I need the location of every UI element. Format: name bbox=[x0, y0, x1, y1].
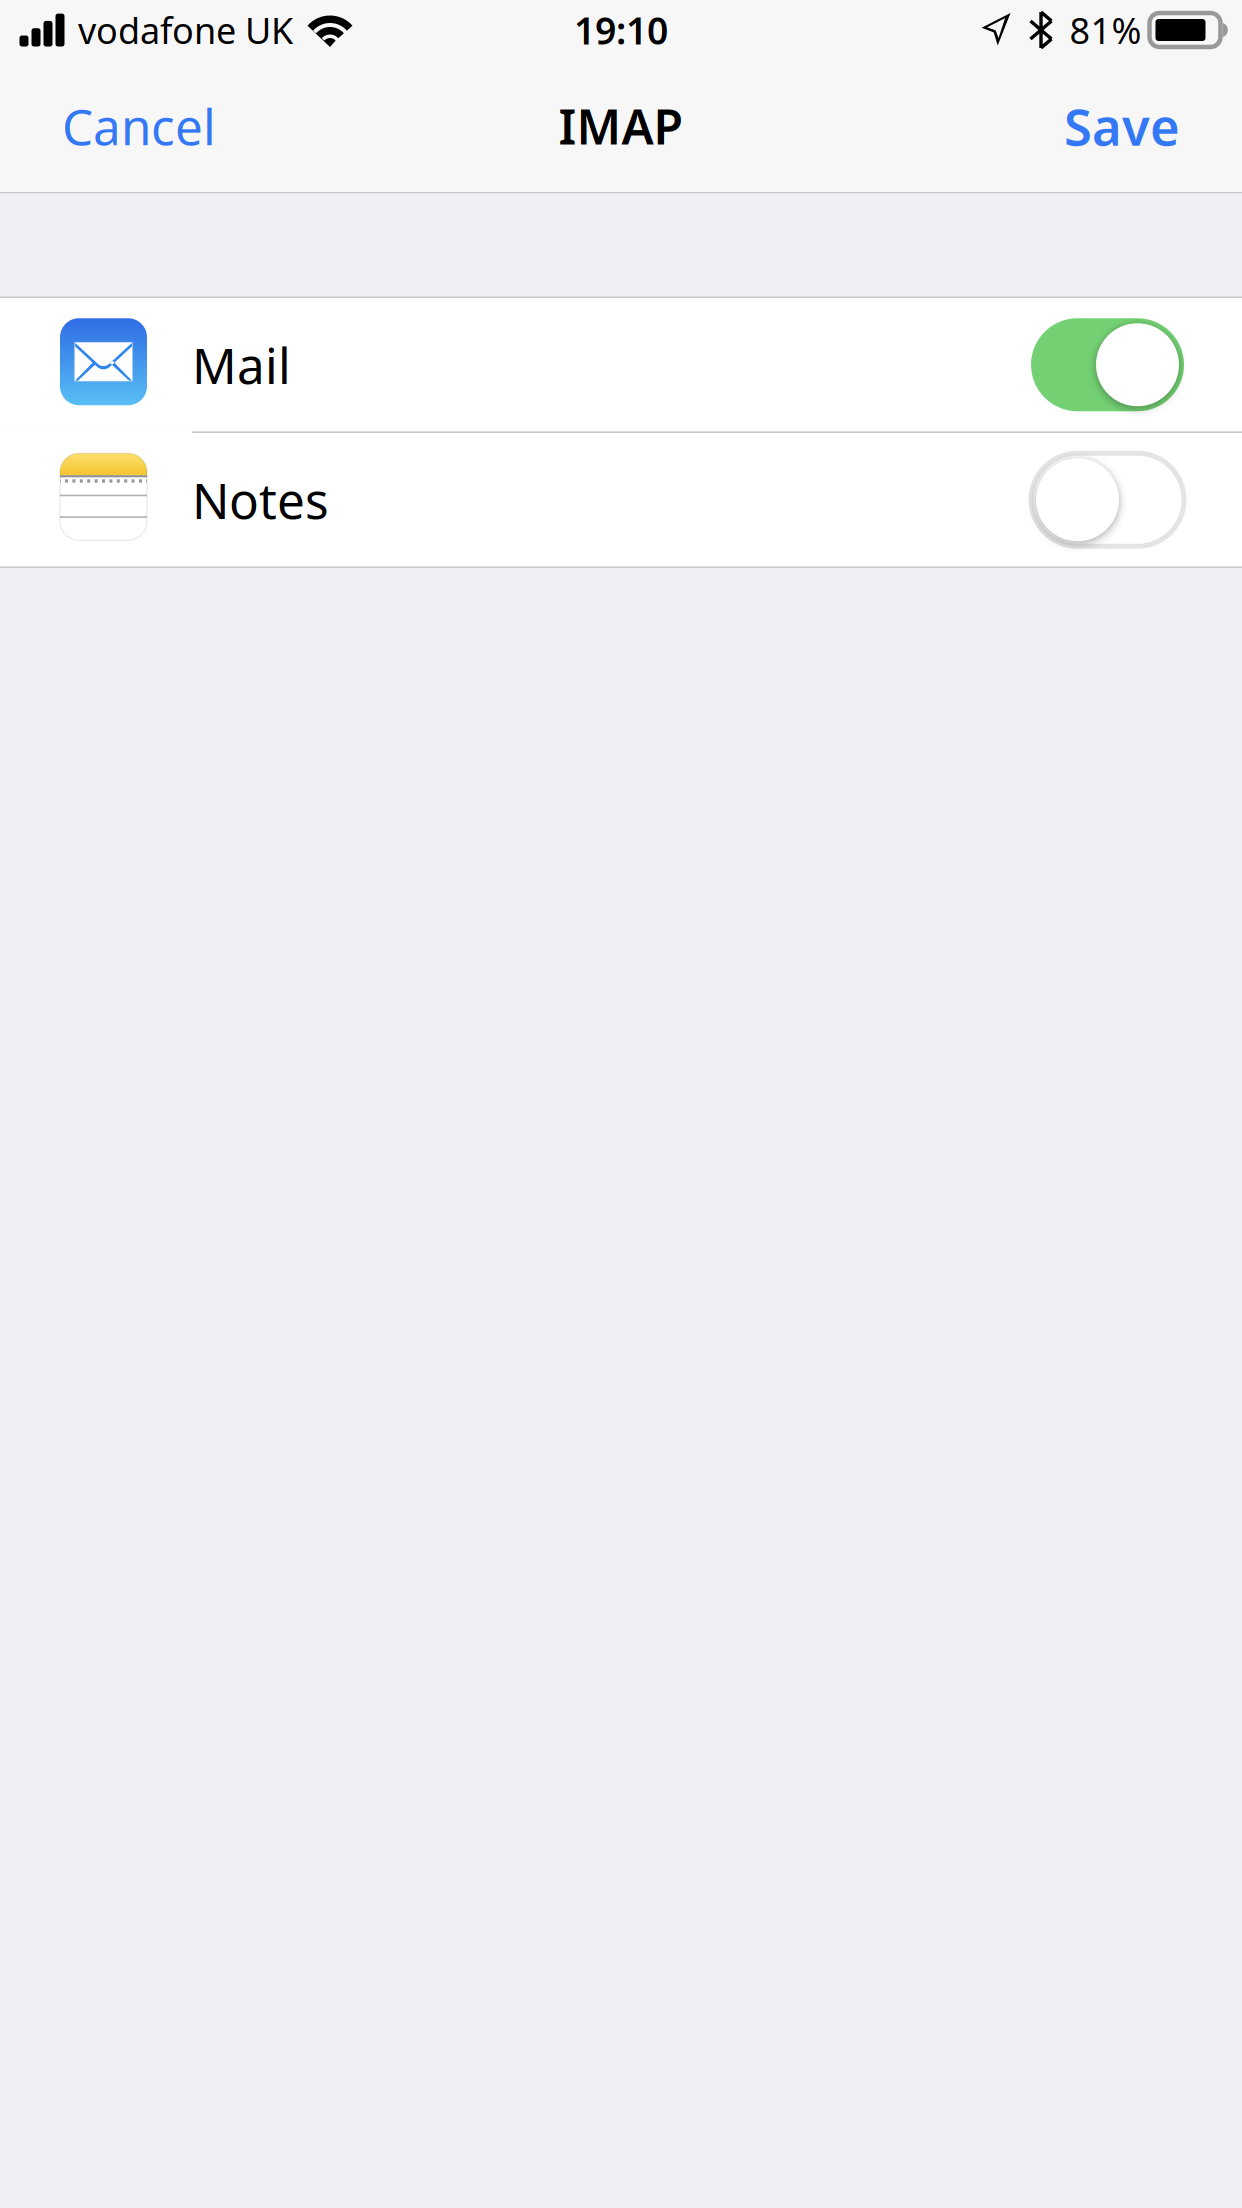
staticText: Save bbox=[1064, 92, 1180, 160]
staticText: Notes bbox=[192, 467, 329, 532]
button[interactable]: Cancel bbox=[62, 60, 216, 192]
staticText: 81% bbox=[1069, 6, 1141, 54]
button[interactable]: Save bbox=[1064, 60, 1180, 192]
staticText: 19:10 bbox=[574, 5, 668, 55]
staticText: IMAP bbox=[558, 94, 683, 158]
staticText: Mail bbox=[192, 332, 291, 397]
button[interactable]: Notes bbox=[0, 433, 1242, 566]
button[interactable]: Mail bbox=[0, 298, 1242, 431]
staticText: vodafone UK bbox=[78, 6, 293, 54]
staticText: Cancel bbox=[62, 93, 216, 159]
